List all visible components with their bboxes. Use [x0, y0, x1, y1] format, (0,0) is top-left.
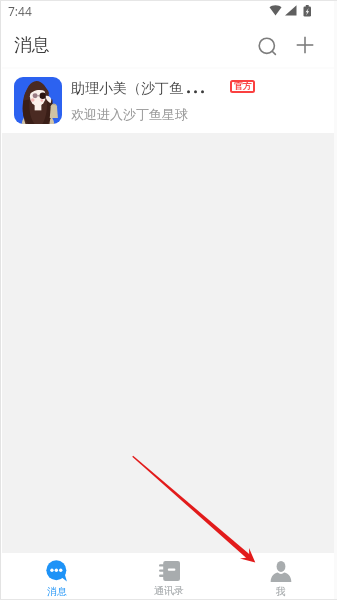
staticText: 消息	[14, 34, 50, 57]
button[interactable]: 通讯录	[113, 553, 225, 600]
button[interactable]: 消息	[0, 553, 113, 600]
button[interactable]: 助理小美（沙丁鱼	[0, 69, 337, 133]
button[interactable]: 我	[225, 553, 337, 600]
staticText: 我	[276, 585, 286, 598]
button[interactable]: Add	[289, 29, 321, 61]
staticText: 官方	[234, 81, 252, 92]
staticText: 通讯录	[154, 584, 184, 597]
staticText: 欢迎进入沙丁鱼星球	[71, 106, 188, 122]
staticText: 消息	[47, 585, 67, 598]
staticText: 7:44	[8, 3, 32, 19]
button[interactable]: Search	[252, 31, 285, 64]
staticText: 助理小美（沙丁鱼	[71, 80, 183, 98]
